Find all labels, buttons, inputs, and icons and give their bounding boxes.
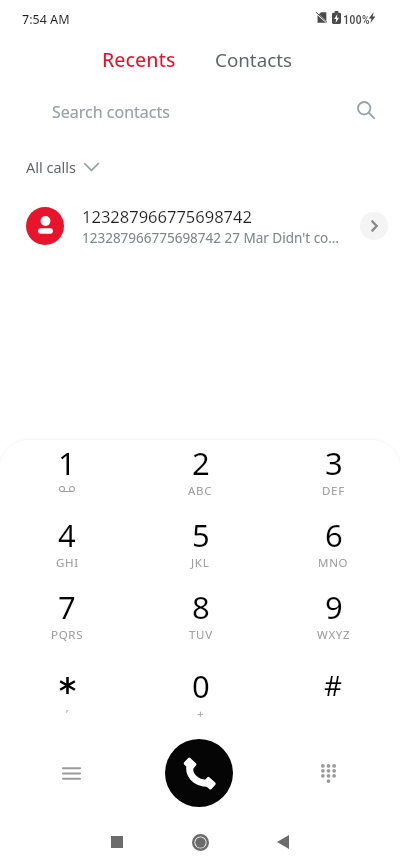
button[interactable]: 2 bbox=[134, 440, 267, 512]
staticText: TUV bbox=[189, 627, 213, 643]
button[interactable]: All calls bbox=[18, 152, 108, 182]
staticText: All calls bbox=[26, 157, 77, 177]
button[interactable]: Dialpad bbox=[304, 749, 352, 797]
staticText: 4 bbox=[58, 514, 76, 556]
staticText: Contacts bbox=[215, 47, 293, 73]
button[interactable]: Recent apps bbox=[93, 818, 141, 866]
staticText: GHI bbox=[56, 555, 79, 571]
staticText: 6 bbox=[325, 514, 343, 556]
button[interactable]: 6 bbox=[267, 512, 400, 584]
staticText: 9 bbox=[325, 586, 343, 628]
staticText: 1 bbox=[58, 442, 76, 484]
button[interactable]: 1 bbox=[0, 440, 134, 512]
staticText: 3 bbox=[325, 442, 343, 484]
button[interactable]: Search contacts bbox=[0, 90, 400, 134]
staticText: ABC bbox=[188, 483, 213, 499]
staticText: Recents bbox=[102, 46, 176, 73]
button[interactable]: 0 bbox=[134, 656, 267, 728]
staticText: 7:54 AM bbox=[22, 11, 70, 28]
button[interactable]: Home bbox=[176, 818, 224, 866]
staticText: + bbox=[197, 706, 205, 722]
staticText: 2 bbox=[192, 442, 210, 484]
button[interactable]: # bbox=[267, 656, 400, 728]
button[interactable]: 123287966775698742 bbox=[0, 202, 400, 250]
staticText: # bbox=[324, 666, 343, 704]
staticText: 123287966775698742 27 Mar Didn't co… bbox=[82, 229, 339, 247]
button[interactable]: 5 bbox=[134, 512, 267, 584]
staticText: 5 bbox=[192, 514, 210, 556]
staticText: JKL bbox=[191, 555, 210, 571]
button[interactable]: Call details bbox=[360, 212, 388, 240]
button[interactable]: Recents bbox=[93, 38, 185, 81]
button[interactable]: Back bbox=[259, 818, 307, 866]
staticText: 100% bbox=[343, 12, 370, 27]
button[interactable]: 7 bbox=[0, 584, 134, 656]
button[interactable]: 8 bbox=[134, 584, 267, 656]
staticText: 8 bbox=[192, 586, 210, 628]
button[interactable]: Call history bbox=[47, 749, 95, 797]
staticText: PQRS bbox=[51, 627, 84, 643]
button[interactable]: 9 bbox=[267, 584, 400, 656]
button[interactable]: ’ bbox=[0, 656, 134, 728]
staticText: MNO bbox=[318, 555, 349, 571]
staticText: Search contacts bbox=[52, 101, 170, 123]
staticText: WXYZ bbox=[317, 627, 351, 643]
staticText: 0 bbox=[192, 665, 210, 707]
button[interactable]: 4 bbox=[0, 512, 134, 584]
button[interactable]: Contacts bbox=[206, 39, 302, 81]
staticText: 7 bbox=[58, 586, 76, 628]
staticText: ’ bbox=[66, 706, 69, 722]
button[interactable]: Search bbox=[354, 98, 378, 122]
button[interactable]: Call bbox=[165, 739, 233, 807]
staticText: DEF bbox=[322, 483, 345, 499]
button[interactable]: 3 bbox=[267, 440, 400, 512]
staticText: 123287966775698742 bbox=[82, 205, 252, 227]
